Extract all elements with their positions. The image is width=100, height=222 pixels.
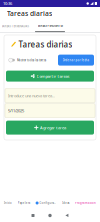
button[interactable]: Papelera [17, 201, 31, 205]
button[interactable]: TAREAS PENDIENTES [30, 20, 70, 32]
button[interactable]: Configura... [35, 201, 57, 205]
button[interactable]: Ideas [61, 201, 70, 205]
staticText: Ideas [62, 201, 69, 205]
button[interactable]: 5/11/2025 [5, 104, 95, 118]
staticText: 5/11/2025 [8, 108, 24, 113]
button[interactable]: Agregar tarea [6, 121, 94, 135]
button[interactable]: Inicio [3, 201, 13, 205]
staticText: Ordenar por fecha [62, 58, 89, 62]
button[interactable]: TAREAS TERMINADAS [0, 20, 30, 32]
staticText: Agregar tarea [40, 125, 66, 130]
button[interactable]: Back [58, 209, 75, 222]
staticText: Compartir tareas [36, 73, 69, 79]
staticText: Mostrar todas las tareas [17, 58, 46, 62]
button[interactable]: Recents [24, 209, 41, 222]
button[interactable]: Ordenar por fecha [58, 55, 94, 66]
staticText: Inicio [4, 201, 12, 205]
staticText: TAREAS PENDIENTES [37, 24, 62, 27]
staticText: Configura... [39, 201, 56, 205]
staticText: Papelera [18, 201, 30, 205]
staticText: Introduce una nueva tarea... [8, 93, 55, 98]
staticText: 10:36 [3, 1, 12, 6]
button[interactable]: Compartir tareas [6, 71, 94, 82]
button[interactable]: Programacion [74, 201, 97, 205]
staticText: TAREAS TERMINADAS [1, 24, 28, 28]
button[interactable]: Home [41, 209, 58, 222]
button[interactable]: Introduce una nueva tarea... [5, 89, 95, 103]
staticText: Programacion [75, 201, 96, 205]
staticText: Tareas diarias [18, 39, 72, 50]
staticText: Tareas diarias [7, 9, 52, 18]
